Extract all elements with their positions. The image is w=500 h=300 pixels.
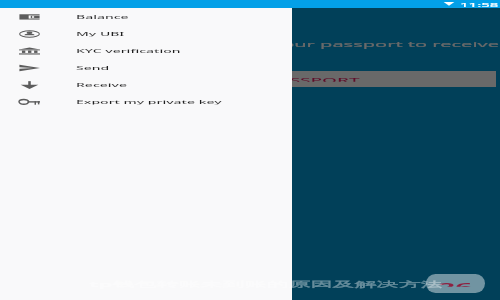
button[interactable]: Export my private key	[0, 93, 292, 110]
staticText: 26	[438, 280, 473, 287]
staticText: tp钱包转账未到账的原因及解决方法	[89, 279, 443, 289]
staticText: Receive	[76, 82, 127, 87]
button[interactable]: KYC verification	[0, 42, 292, 59]
staticText: 11:58	[460, 2, 499, 8]
other: Download	[443, 1, 455, 6]
staticText: Please verify your passport to receive U…	[149, 40, 500, 49]
staticText: Balance	[76, 14, 129, 19]
button[interactable]: Balance	[0, 8, 292, 25]
button[interactable]: My UBI	[0, 25, 292, 42]
staticText: VERIFY MY PASSPORT	[166, 76, 360, 82]
staticText: Send	[76, 65, 110, 70]
button[interactable]: VERIFY MY PASSPORT	[4, 71, 496, 87]
button[interactable]: Send	[0, 59, 292, 76]
button[interactable]: Receive	[0, 76, 292, 93]
staticText: KYC verification	[76, 48, 181, 53]
staticText: My UBI	[76, 31, 125, 36]
staticText: Export my private key	[76, 99, 222, 104]
